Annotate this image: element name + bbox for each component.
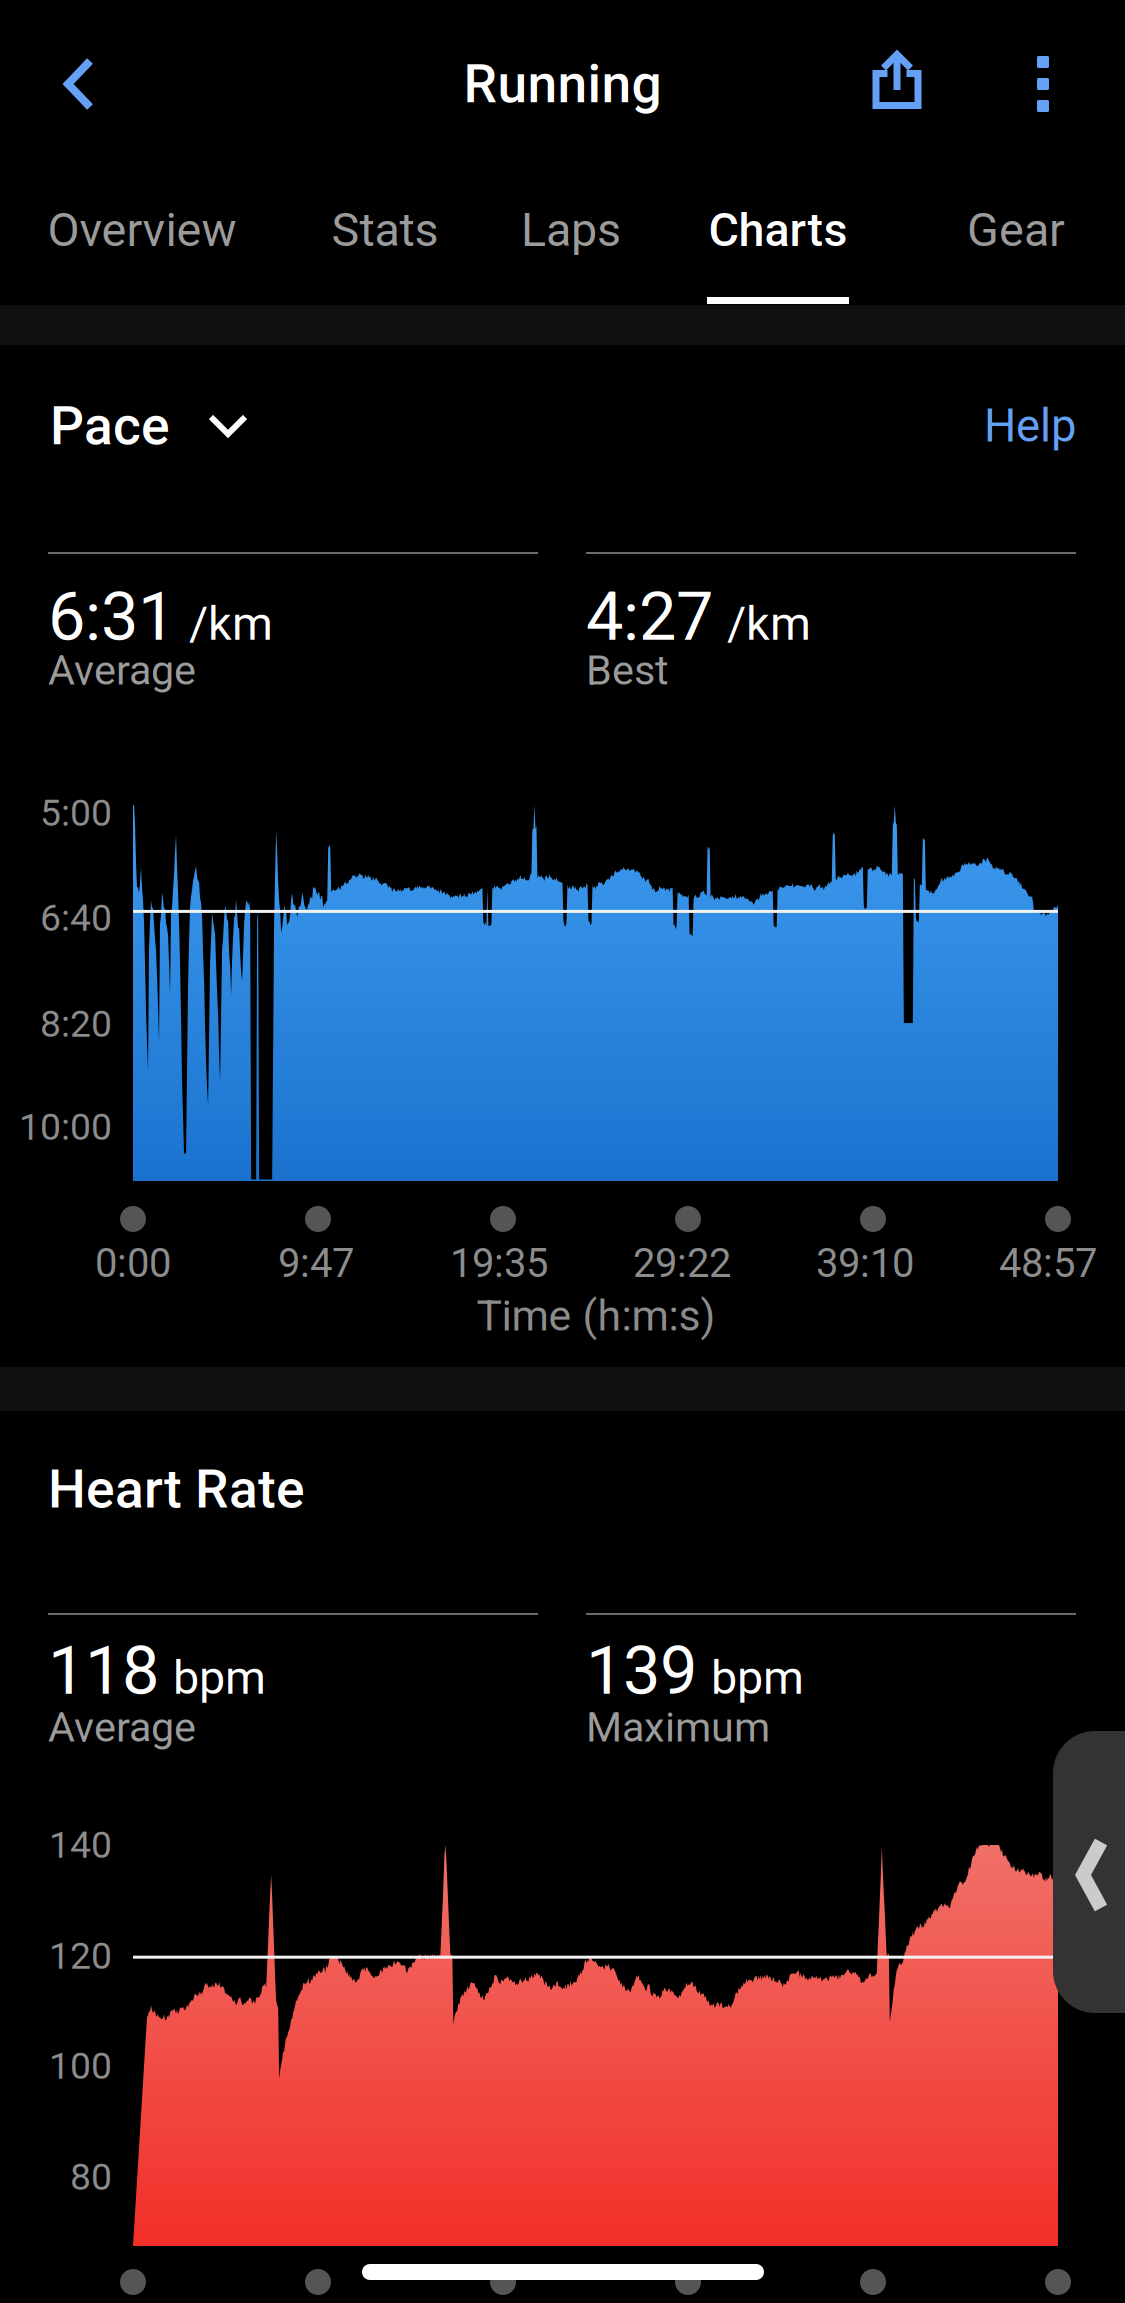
button[interactable]: More options [998, 28, 1088, 140]
staticText: 80 [70, 2155, 112, 2199]
staticText: Pace [50, 395, 170, 457]
staticText: Charts [708, 203, 847, 257]
staticText: /km [189, 597, 273, 651]
button[interactable]: Overview [24, 194, 260, 316]
button[interactable]: Help [946, 390, 1076, 462]
staticText: Time (h:m:s) [476, 1291, 715, 1341]
button[interactable]: Share [849, 23, 945, 135]
staticText: 48:57 [999, 1240, 1097, 1287]
staticText: 120 [49, 1934, 112, 1978]
staticText: Overview [47, 203, 236, 257]
staticText: 8:20 [40, 1002, 112, 1046]
staticText: bpm [173, 1651, 266, 1705]
staticText: Average [48, 646, 196, 694]
staticText: Running [463, 53, 661, 115]
button[interactable]: Stats [300, 194, 470, 316]
staticText: 0:00 [95, 1240, 171, 1287]
staticText: 39:10 [816, 1240, 914, 1287]
staticText: Help [984, 399, 1076, 452]
button[interactable]: Back [24, 28, 134, 140]
staticText: 4:27 [586, 578, 713, 656]
staticText: /km [727, 597, 811, 651]
staticText: Maximum [586, 1703, 770, 1751]
staticText: Best [586, 646, 669, 694]
button[interactable]: Pace [50, 390, 350, 462]
staticText: Gear [967, 203, 1065, 257]
staticText: 9:47 [278, 1240, 354, 1287]
staticText: bpm [711, 1651, 804, 1705]
staticText: 100 [49, 2044, 112, 2088]
staticText: 140 [49, 1823, 112, 1867]
staticText: 19:35 [450, 1240, 548, 1287]
button[interactable]: Charts [692, 194, 864, 316]
staticText: 139 [586, 1632, 697, 1710]
button[interactable]: Show lap details [1053, 1731, 1125, 2013]
staticText: Stats [331, 203, 438, 257]
staticText: 6:31 [48, 578, 175, 656]
staticText: Laps [521, 203, 621, 257]
button[interactable]: Laps [496, 194, 646, 316]
staticText: 5:00 [40, 791, 112, 835]
staticText: 10:00 [19, 1105, 112, 1149]
staticText: 6:40 [40, 896, 112, 940]
button[interactable]: Gear [940, 194, 1092, 316]
staticText: Heart Rate [48, 1458, 305, 1520]
staticText: 118 [48, 1632, 159, 1710]
staticText: Average [48, 1703, 196, 1751]
staticText: 29:22 [633, 1240, 731, 1287]
